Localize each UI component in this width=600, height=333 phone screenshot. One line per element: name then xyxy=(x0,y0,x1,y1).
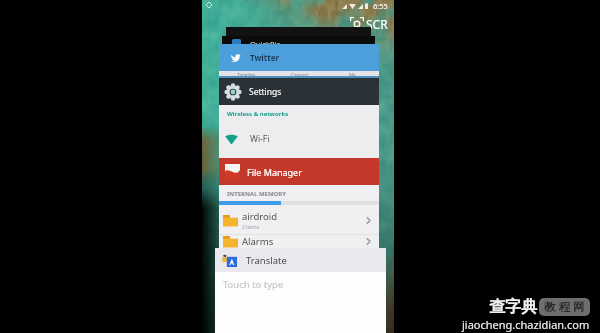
staticText: Settings xyxy=(249,86,282,98)
staticText: SCR xyxy=(366,16,388,32)
staticText: 2 items xyxy=(242,224,260,231)
staticText: Alarms xyxy=(242,235,274,248)
button[interactable]: Settings xyxy=(219,78,379,158)
button[interactable]: File Manager xyxy=(219,158,379,248)
staticText: Timeline xyxy=(237,72,256,78)
staticText: File Manager xyxy=(247,166,302,178)
button[interactable] xyxy=(222,36,375,47)
staticText: 6:55 xyxy=(373,1,388,11)
button[interactable]: Translate xyxy=(215,248,386,333)
staticText: INTERNAL MEMORY xyxy=(227,190,287,198)
staticText: Translate xyxy=(246,254,287,267)
button[interactable]: Twitter xyxy=(219,44,379,78)
staticText: Wi-Fi xyxy=(250,133,270,145)
staticText: 教 程 网 xyxy=(544,299,585,315)
staticText: Connect xyxy=(291,72,309,78)
staticText: QuickPic xyxy=(250,39,281,48)
staticText: Me xyxy=(349,72,356,78)
staticText: Touch to type xyxy=(223,278,284,291)
staticText: airdroid xyxy=(242,210,278,223)
staticText: jiaocheng.chazidian.com xyxy=(462,317,590,332)
staticText: 查字典 xyxy=(489,297,537,317)
button[interactable]: Screen recorder xyxy=(350,16,388,32)
staticText: Twitter xyxy=(250,52,279,63)
staticText: Wireless & networks xyxy=(227,110,289,118)
